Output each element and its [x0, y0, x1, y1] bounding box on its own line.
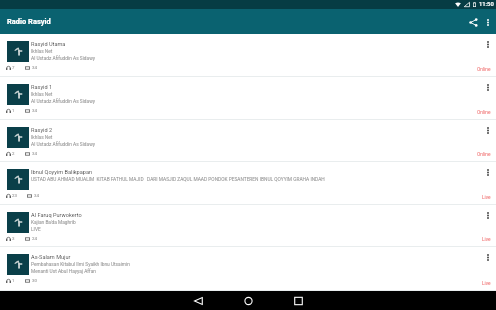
staticText: Ikhlas Net — [31, 92, 53, 98]
staticText: LIVE — [31, 227, 41, 233]
staticText: 34 — [32, 65, 37, 70]
button[interactable]: More options — [480, 37, 496, 52]
button[interactable]: More options — [480, 10, 496, 34]
staticText: Radio Rasyid — [7, 17, 51, 26]
button[interactable]: More options — [480, 208, 496, 223]
staticText: Live — [482, 195, 491, 201]
staticText: 3 — [12, 236, 15, 241]
staticText: Ikhlas Net — [31, 49, 53, 55]
staticText: Rasyid 1 — [31, 84, 53, 91]
button[interactable]: Rasyid 1 — [0, 77, 496, 120]
staticText: 7 — [12, 65, 15, 70]
staticText: Al Ustadz Afifuddin As Sidawy — [31, 56, 96, 62]
staticText: USTAD ABU AHMAD MUALIM KITAB FATHUL MAJI… — [31, 177, 325, 183]
staticText: Online — [477, 110, 491, 116]
button[interactable]: More options — [480, 165, 496, 180]
button[interactable]: Al Faruq Purwokerto — [0, 205, 496, 247]
staticText: Pembahasan Kitabul Ilmi Syaikh Ibnu Utsa… — [31, 262, 130, 268]
staticText: 34 — [34, 193, 39, 198]
button[interactable]: Home — [223, 291, 273, 310]
button[interactable]: Rasyid Utama — [0, 34, 496, 77]
staticText: Live — [482, 281, 491, 287]
staticText: 1 — [12, 108, 15, 113]
staticText: 30 — [32, 278, 37, 283]
button[interactable]: Back — [173, 291, 223, 310]
staticText: Rasyid 2 — [31, 127, 53, 134]
staticText: 24 — [32, 236, 37, 241]
button[interactable]: More options — [480, 250, 496, 265]
button[interactable]: More options — [480, 123, 496, 138]
staticText: Online — [477, 152, 491, 158]
staticText: 34 — [32, 108, 37, 113]
staticText: Ikhlas Net — [31, 135, 53, 141]
button[interactable]: Ibnul Qoyyim Balikpapan — [0, 162, 496, 205]
staticText: 2 — [12, 151, 15, 156]
staticText: As-Salam Mujur — [31, 254, 71, 261]
staticText: Ibnul Qoyyim Balikpapan — [31, 169, 93, 176]
staticText: Rasyid Utama — [31, 41, 66, 48]
staticText: 11:50 — [479, 1, 494, 8]
staticText: 23 — [12, 193, 17, 198]
staticText: 34 — [32, 151, 37, 156]
staticText: Al Faruq Purwokerto — [31, 212, 82, 219]
button[interactable]: Rasyid 2 — [0, 120, 496, 162]
staticText: Menanti Ust Abul Hayyaj Affan — [31, 269, 96, 275]
staticText: Al Ustadz Afifuddin As Sidawy — [31, 142, 96, 148]
staticText: Live — [482, 237, 491, 243]
staticText: Al Ustadz Afifuddin As Sidawy — [31, 99, 96, 105]
staticText: Kajian Ba'da Maghrib — [31, 220, 76, 226]
staticText: 1 — [12, 278, 15, 283]
button[interactable]: Share — [465, 10, 482, 34]
staticText: Online — [477, 67, 491, 73]
button[interactable]: Recent apps — [273, 291, 323, 310]
button[interactable]: As-Salam Mujur — [0, 247, 496, 291]
button[interactable]: More options — [480, 80, 496, 95]
